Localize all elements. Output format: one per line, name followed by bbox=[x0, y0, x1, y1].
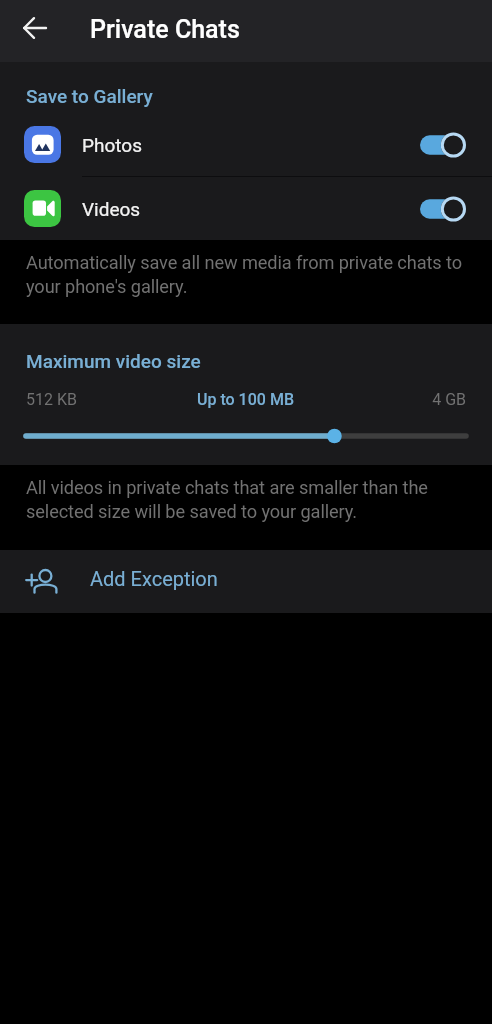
button[interactable]: Photos bbox=[0, 112, 492, 177]
button[interactable]: Videos bbox=[0, 177, 492, 240]
button[interactable]: Add Exception bbox=[0, 550, 492, 613]
staticText: Photos bbox=[82, 134, 420, 156]
staticText: Up to 100 MB bbox=[172, 390, 319, 409]
staticText: Videos bbox=[82, 198, 420, 220]
staticText: Private Chats bbox=[90, 15, 240, 44]
button[interactable]: Maximum video size slider bbox=[0, 324, 492, 465]
staticText: Maximum video size bbox=[26, 350, 201, 372]
staticText: Save to Gallery bbox=[26, 85, 153, 107]
staticText: All videos in private chats that are sma… bbox=[26, 477, 478, 522]
staticText: Automatically save all new media from pr… bbox=[26, 252, 478, 297]
staticText: Add Exception bbox=[90, 567, 218, 590]
staticText: 4 GB bbox=[319, 390, 466, 409]
button[interactable]: Back bbox=[0, 0, 70, 62]
staticText: 512 KB bbox=[26, 390, 172, 409]
